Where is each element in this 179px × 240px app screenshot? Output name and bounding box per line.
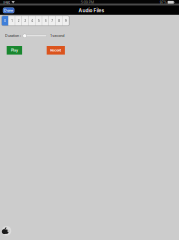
staticText: Play bbox=[11, 48, 18, 52]
staticText: iPad bbox=[3, 0, 10, 4]
button[interactable]: Done bbox=[3, 8, 14, 13]
staticText: 1 bbox=[11, 19, 12, 23]
staticText: Record bbox=[50, 48, 61, 52]
staticText: 7 bbox=[51, 19, 53, 23]
staticText: 0 bbox=[4, 19, 6, 23]
staticText: Duration : bbox=[5, 34, 21, 38]
staticText: 5 bbox=[38, 19, 40, 23]
button[interactable]: 7 bbox=[49, 16, 56, 26]
button[interactable]: 1 bbox=[8, 16, 15, 26]
button[interactable]: 9 bbox=[62, 16, 69, 26]
button[interactable]: Play bbox=[7, 46, 22, 55]
staticText: 8 bbox=[58, 19, 60, 23]
staticText: Done bbox=[4, 8, 13, 13]
staticText: 4 bbox=[31, 19, 33, 23]
staticText: 5:09 PM bbox=[81, 0, 94, 4]
button[interactable]: 8 bbox=[56, 16, 63, 26]
button[interactable]: 0 bbox=[2, 16, 9, 26]
button[interactable]: 3 bbox=[22, 16, 29, 26]
staticText: 97% bbox=[160, 0, 167, 4]
button[interactable]: Record bbox=[47, 46, 65, 55]
staticText: 2 bbox=[18, 19, 20, 23]
staticText: 3 bbox=[24, 19, 26, 23]
button[interactable]: 4 bbox=[29, 16, 36, 26]
staticText: 1 second bbox=[50, 34, 64, 38]
staticText: 6 bbox=[45, 19, 47, 23]
staticText: Audio Files bbox=[78, 7, 104, 13]
button[interactable]: 6 bbox=[42, 16, 49, 26]
button[interactable]: 2 bbox=[15, 16, 22, 26]
button[interactable]: 5 bbox=[35, 16, 42, 26]
staticText: 9 bbox=[65, 19, 67, 23]
